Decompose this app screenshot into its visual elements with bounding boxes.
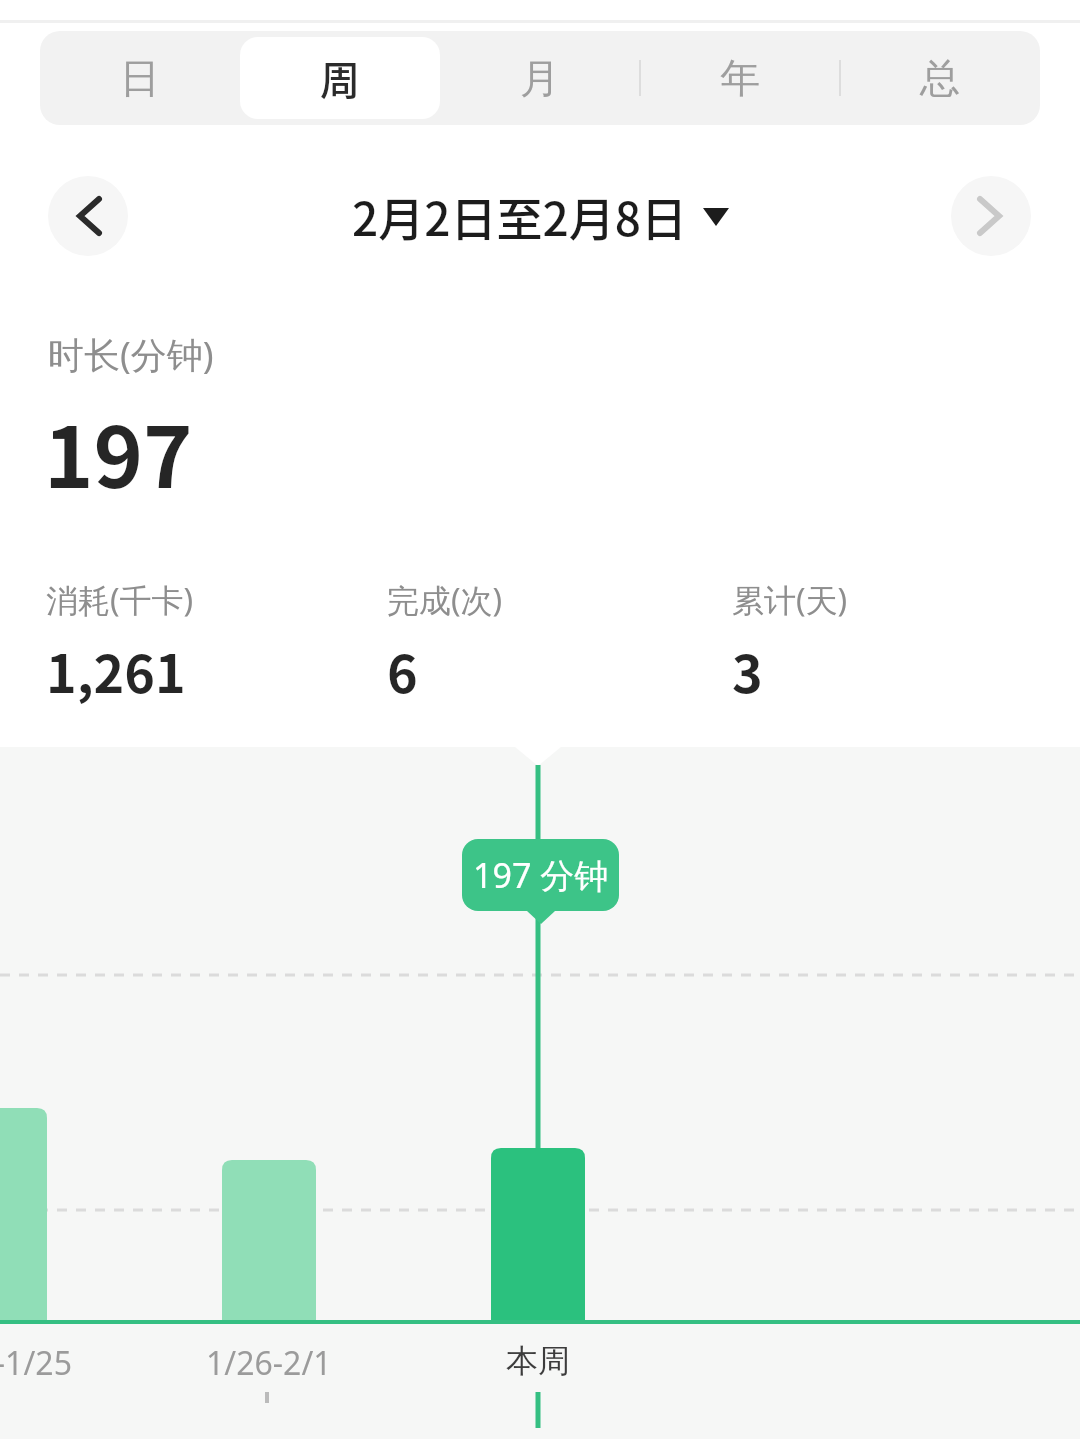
staticText: 6	[387, 633, 418, 708]
staticText: 本周	[506, 1341, 570, 1381]
staticText: 日	[120, 53, 160, 103]
button[interactable]: 总	[840, 31, 1040, 125]
staticText: 时长(分钟)	[48, 330, 214, 379]
button[interactable]: 1/19-1/25	[0, 1341, 150, 1385]
button[interactable]: 年	[640, 31, 840, 125]
staticText: 年	[720, 53, 760, 103]
staticText: 2月2日至2月8日	[352, 183, 687, 250]
staticText: 3	[732, 633, 763, 708]
staticText: 消耗(千卡)	[46, 578, 194, 622]
staticText: 1/19-1/25	[0, 1341, 72, 1385]
staticText: 周	[320, 49, 360, 107]
button[interactable]	[48, 176, 128, 256]
staticText: 1,261	[46, 633, 186, 708]
button[interactable]: 周	[240, 31, 440, 125]
staticText: 累计(天)	[732, 578, 848, 622]
button[interactable]: 日	[40, 31, 240, 125]
staticText: 月	[520, 53, 560, 103]
staticText: 总	[920, 53, 960, 103]
staticText: 197	[44, 391, 193, 513]
staticText: 完成(次)	[387, 578, 503, 622]
button[interactable]: 本周	[388, 1341, 688, 1381]
button[interactable]: 1/26-2/1	[119, 1341, 419, 1385]
staticText: 1/26-2/1	[206, 1341, 332, 1385]
button[interactable]	[951, 176, 1031, 256]
button[interactable]: 月	[440, 31, 640, 125]
staticText: 197 分钟	[473, 852, 609, 898]
button[interactable]: 2月2日至2月8日	[352, 183, 729, 250]
